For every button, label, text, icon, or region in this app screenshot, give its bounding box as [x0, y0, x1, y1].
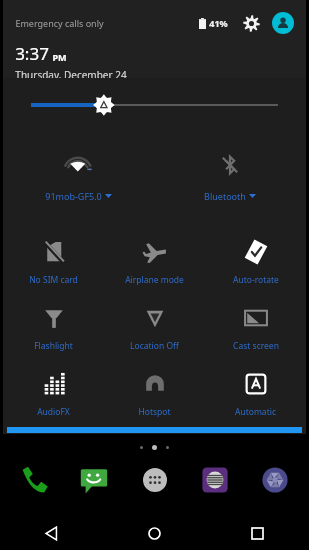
button[interactable]: Hotspot: [104, 362, 205, 428]
staticText: Flashlight: [34, 340, 73, 352]
button[interactable]: AudioFX: [3, 362, 104, 428]
staticText: 41%: [209, 17, 228, 29]
staticText: PM: [52, 51, 67, 63]
staticText: Automatic: [235, 406, 276, 418]
button[interactable]: 91mob-GF5.0: [3, 142, 154, 214]
button[interactable]: User profile: [272, 12, 294, 34]
button[interactable]: Airplane mode: [104, 230, 205, 296]
button[interactable]: Messaging: [74, 460, 114, 500]
staticText: AudioFX: [37, 406, 70, 418]
button[interactable]: Auto-rotate: [205, 230, 306, 296]
staticText: Bluetooth: [204, 190, 246, 202]
button[interactable]: Flashlight: [3, 296, 104, 362]
button[interactable]: Settings: [240, 12, 262, 34]
staticText: No SIM card: [29, 274, 78, 286]
staticText: 91mob-GF5.0: [45, 190, 102, 202]
staticText: 3:37: [15, 42, 49, 65]
staticText: Emergency calls only: [15, 17, 104, 29]
button[interactable]: Location Off: [104, 296, 205, 362]
staticText: Airplane mode: [125, 274, 184, 286]
staticText: Auto-rotate: [233, 274, 279, 286]
button[interactable]: Recent apps: [206, 516, 309, 550]
button[interactable]: Cast screen: [205, 296, 306, 362]
button[interactable]: Phone: [14, 460, 54, 500]
button[interactable]: All apps: [135, 460, 175, 500]
button[interactable]: No SIM card: [3, 230, 104, 296]
button[interactable]: Brightness: [3, 82, 306, 128]
staticText: Location Off: [130, 340, 179, 352]
staticText: Hotspot: [138, 406, 171, 418]
staticText: Thursday, December 24: [15, 68, 127, 78]
button[interactable]: Camera: [255, 460, 295, 500]
button[interactable]: Browser: [195, 460, 235, 500]
button[interactable]: Bluetooth: [154, 142, 306, 214]
button[interactable]: Automatic: [205, 362, 306, 428]
button[interactable]: Back: [0, 516, 103, 550]
button[interactable]: Home: [103, 516, 206, 550]
staticText: Cast screen: [233, 340, 279, 352]
